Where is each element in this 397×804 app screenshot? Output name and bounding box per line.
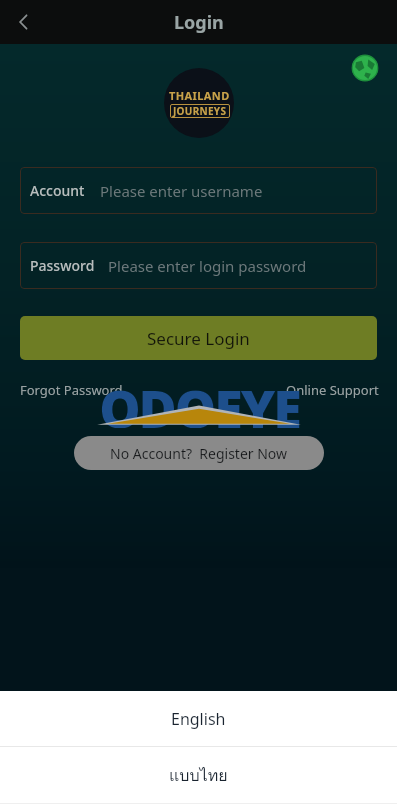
staticText: JOURNEYS	[173, 104, 227, 118]
staticText: Account	[30, 181, 85, 200]
button[interactable]: Secure Login	[20, 316, 377, 360]
staticText: English	[171, 708, 226, 730]
staticText: ODOEYE	[99, 372, 300, 428]
staticText: Please enter login password	[108, 256, 307, 276]
button[interactable]: Back	[0, 0, 48, 44]
staticText: Password	[30, 256, 95, 275]
staticText: Online Support	[286, 381, 379, 399]
staticText: Forgot Password	[20, 381, 123, 399]
button[interactable]: Language	[347, 50, 383, 86]
button[interactable]: แบบไทย	[0, 747, 397, 803]
button[interactable]: Forgot Password	[20, 381, 123, 399]
button[interactable]: English	[0, 691, 397, 746]
staticText: No Account? Register Now	[110, 444, 288, 463]
button[interactable]: Online Support	[286, 381, 379, 399]
staticText: THAILAND	[169, 88, 230, 103]
staticText: แบบไทย	[169, 763, 228, 788]
staticText: Please enter username	[100, 181, 263, 201]
button[interactable]: Password	[20, 242, 377, 289]
button[interactable]: Account	[20, 167, 377, 214]
staticText: Login	[174, 10, 224, 35]
button[interactable]: No Account? Register Now	[74, 436, 324, 470]
staticText: Secure Login	[147, 327, 250, 350]
